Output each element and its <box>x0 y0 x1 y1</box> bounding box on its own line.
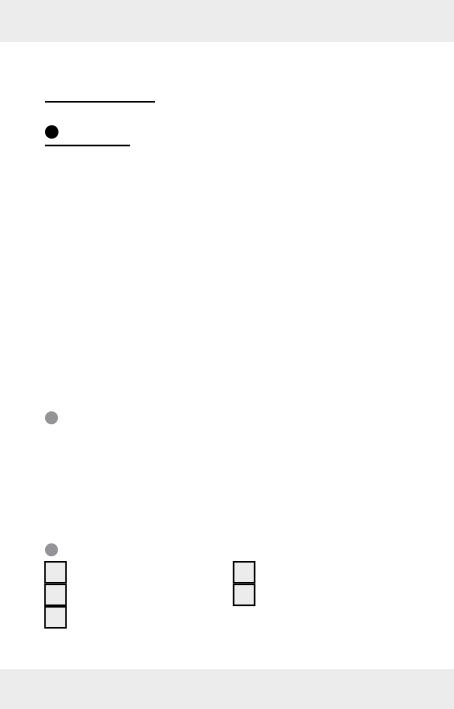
button[interactable]: Option 5 <box>234 584 255 605</box>
button[interactable]: Option 3 <box>45 607 66 628</box>
button[interactable]: Option 1 <box>45 562 66 583</box>
button[interactable]: List entry <box>45 125 130 146</box>
button[interactable]: Option 2 <box>45 584 66 605</box>
button[interactable]: Option 4 <box>234 562 255 583</box>
